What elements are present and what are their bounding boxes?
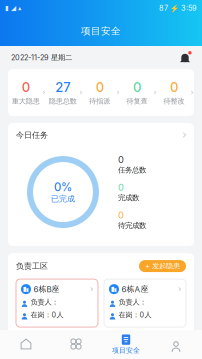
staticText: 0% xyxy=(54,180,72,194)
button[interactable]: 项目安全 xyxy=(101,331,151,357)
staticText: ▮ ◢ ▴ xyxy=(5,4,21,12)
staticText: 0 xyxy=(118,154,124,165)
staticText: 6栋A座 xyxy=(121,284,148,294)
staticText: 项目安全 xyxy=(112,346,140,355)
staticText: 0 xyxy=(118,209,124,221)
staticText: 负责人： xyxy=(30,298,58,307)
button[interactable]: 27 xyxy=(46,78,80,106)
staticText: 27 xyxy=(55,79,70,95)
button[interactable]: 应用 xyxy=(51,331,101,357)
staticText: 完成数 xyxy=(118,193,139,202)
staticText: 待整改 xyxy=(163,97,184,106)
button[interactable]: 0 xyxy=(9,78,43,106)
staticText: 待完成数 xyxy=(118,221,146,230)
staticText: 0 xyxy=(170,79,178,95)
button[interactable]: 0 xyxy=(120,78,154,106)
staticText: 任务总数 xyxy=(118,165,146,175)
button[interactable]: 0 xyxy=(83,78,117,106)
staticText: 6栋B座 xyxy=(33,284,59,294)
staticText: 重大隐患 xyxy=(12,97,40,106)
staticText: 待复查 xyxy=(126,97,147,106)
staticText: 0 xyxy=(22,79,30,95)
staticText: 0 xyxy=(133,79,141,95)
staticText: 项目安全 xyxy=(81,25,121,37)
button[interactable]: 我的 xyxy=(151,331,201,357)
button[interactable]: 6栋A座 xyxy=(104,279,186,327)
staticText: 待指派 xyxy=(89,97,110,106)
staticText: 负责人： xyxy=(118,298,146,307)
staticText: + 发起隐患 xyxy=(145,262,180,271)
staticText: 负责工区 xyxy=(16,261,48,271)
staticText: 已完成 xyxy=(51,194,75,204)
button[interactable]: 今日任务 xyxy=(8,123,194,147)
staticText: 2022-11-29 星期二 xyxy=(11,53,72,62)
button[interactable]: 0 xyxy=(157,78,191,106)
button[interactable]: 6栋B座 xyxy=(16,279,98,327)
staticText: 0 xyxy=(118,182,124,193)
staticText: 0 xyxy=(96,79,104,95)
staticText: 在岗：0人 xyxy=(118,310,151,319)
staticText: 在岗：0人 xyxy=(30,310,63,319)
button[interactable]: 首页 xyxy=(1,331,51,357)
staticText: 87 ⚡ 3:59 xyxy=(159,4,197,12)
staticText: 今日任务 xyxy=(16,130,48,140)
button[interactable]: 发起隐患 xyxy=(139,260,186,272)
staticText: 隐患总数 xyxy=(49,97,77,106)
button[interactable]: 通知 xyxy=(179,51,191,63)
